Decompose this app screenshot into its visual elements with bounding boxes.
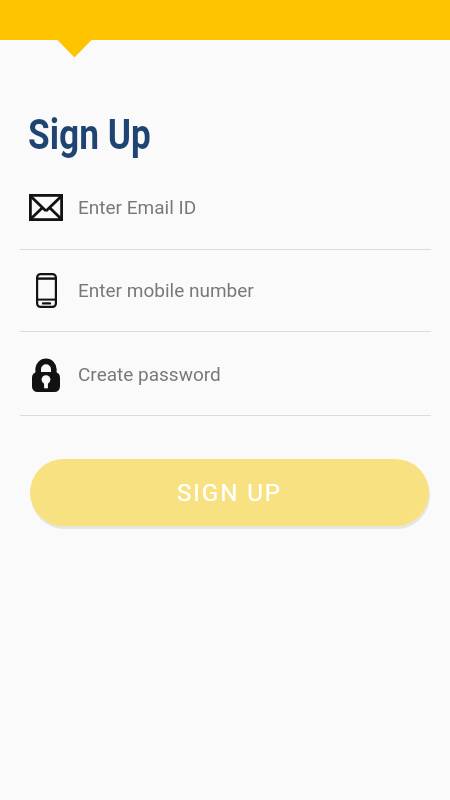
staticText: Create password (78, 363, 221, 385)
staticText: Sign Up (28, 110, 151, 159)
staticText: Enter mobile number (78, 279, 254, 301)
button[interactable]: Enter Email ID (0, 182, 450, 232)
button[interactable]: Enter mobile number (0, 265, 450, 315)
staticText: Enter Email ID (78, 196, 197, 218)
button[interactable]: Create password (0, 349, 450, 399)
staticText: SIGN UP (177, 479, 282, 507)
button[interactable]: SIGN UP (30, 459, 429, 526)
